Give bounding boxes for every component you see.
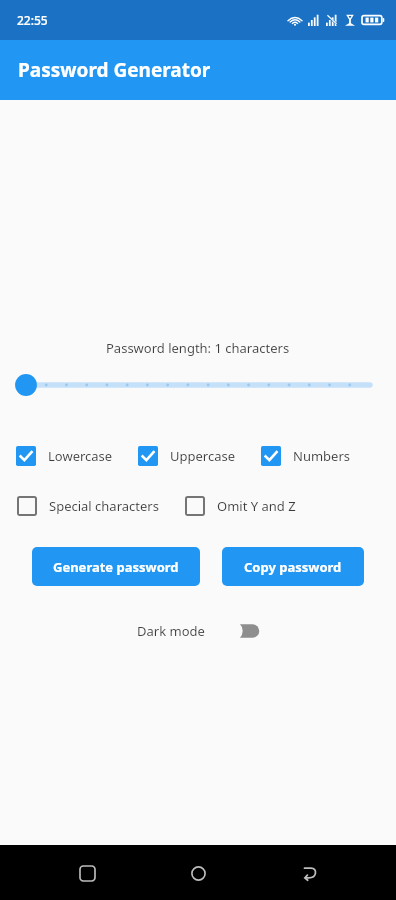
staticText: Special characters (49, 497, 159, 515)
button[interactable]: Omit Y and Z (185, 496, 296, 516)
staticText: Copy password (244, 558, 342, 576)
button[interactable]: Back (285, 849, 333, 897)
button[interactable]: Home (174, 849, 222, 897)
staticText: Uppercase (170, 447, 236, 465)
button[interactable] (0, 372, 396, 398)
staticText: Lowercase (48, 447, 113, 465)
button[interactable]: Dark mode (137, 620, 260, 642)
button[interactable]: Numbers (261, 446, 350, 466)
button[interactable]: Special characters (17, 496, 159, 516)
button[interactable]: Lowercase (16, 446, 113, 466)
staticText: Generate password (53, 558, 179, 576)
button[interactable]: Recent apps (63, 849, 111, 897)
button[interactable]: Uppercase (138, 446, 236, 466)
staticText: 22:55 (17, 12, 48, 28)
staticText: Password Generator (18, 57, 211, 83)
staticText: Dark mode (137, 622, 205, 640)
button[interactable]: Generate password (32, 547, 200, 586)
staticText: Omit Y and Z (217, 497, 296, 515)
staticText: Numbers (293, 447, 350, 465)
staticText: Password length: 1 characters (106, 339, 290, 357)
button[interactable]: Copy password (222, 547, 364, 586)
